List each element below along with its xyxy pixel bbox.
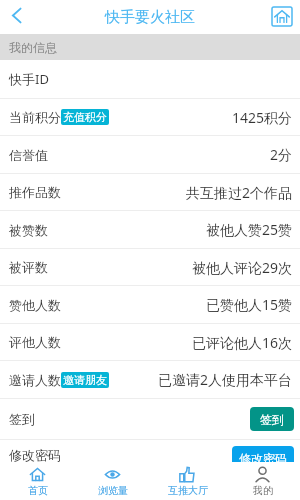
staticText: 被评数 bbox=[9, 259, 48, 275]
staticText: 我的 bbox=[253, 484, 273, 497]
staticText: 快手ID bbox=[9, 70, 49, 88]
button[interactable]: 评他人数 bbox=[0, 324, 300, 360]
button[interactable]: 修改密码 bbox=[232, 446, 294, 470]
staticText: 已赞他人15赞 bbox=[206, 295, 293, 314]
staticText: 充值积分 bbox=[63, 110, 107, 124]
button[interactable]: 首页 bbox=[0, 462, 75, 500]
staticText: 邀请朋友 bbox=[63, 373, 107, 387]
staticText: 快手要火社区 bbox=[105, 8, 195, 27]
button[interactable]: 快手ID bbox=[0, 60, 300, 98]
staticText: 2分 bbox=[270, 145, 293, 164]
staticText: 已邀请2人使用本平台 bbox=[158, 370, 293, 389]
staticText: 被他人评论29次 bbox=[192, 258, 293, 277]
staticText: 修改密码 bbox=[239, 451, 287, 466]
staticText: 1425积分 bbox=[232, 108, 293, 127]
staticText: 邀请人数 bbox=[9, 372, 61, 388]
button[interactable]: 赞他人数 bbox=[0, 286, 300, 323]
staticText: 互推大厅 bbox=[168, 484, 208, 497]
staticText: 修改密码 bbox=[9, 447, 61, 463]
button[interactable]: Back bbox=[0, 0, 32, 34]
staticText: 我的信息 bbox=[9, 40, 57, 55]
button[interactable]: 推作品数 bbox=[0, 174, 300, 210]
staticText: 共互推过2个作品 bbox=[186, 183, 293, 202]
staticText: 签到 bbox=[9, 411, 35, 427]
staticText: 签到 bbox=[260, 412, 284, 427]
button[interactable]: 被赞数 bbox=[0, 211, 300, 248]
button[interactable]: 我的 bbox=[225, 462, 300, 500]
staticText: 信誉值 bbox=[9, 147, 48, 163]
button[interactable]: 浏览量 bbox=[75, 462, 150, 500]
staticText: 已评论他人16次 bbox=[192, 333, 293, 352]
button[interactable]: 邀请人数 bbox=[0, 361, 300, 398]
staticText: 首页 bbox=[28, 484, 48, 497]
button[interactable]: 签到 bbox=[250, 407, 294, 431]
staticText: 被他人赞25赞 bbox=[206, 220, 293, 239]
button[interactable]: Home bbox=[270, 0, 300, 34]
staticText: 赞他人数 bbox=[9, 297, 61, 313]
staticText: 推作品数 bbox=[9, 184, 61, 200]
button[interactable]: 被评数 bbox=[0, 249, 300, 285]
staticText: 浏览量 bbox=[98, 484, 128, 497]
staticText: 当前积分 bbox=[9, 109, 61, 125]
button[interactable]: 信誉值 bbox=[0, 136, 300, 173]
button[interactable]: 当前积分 bbox=[0, 99, 300, 135]
button[interactable]: 互推大厅 bbox=[150, 462, 225, 500]
staticText: 被赞数 bbox=[9, 222, 48, 238]
staticText: 评他人数 bbox=[9, 334, 61, 350]
